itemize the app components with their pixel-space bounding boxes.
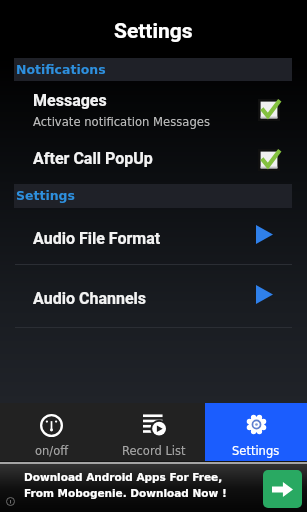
staticText: on/off [35,444,69,457]
button[interactable]: Open ad [263,470,302,508]
button[interactable]: On/Off [0,403,103,461]
other: On/Off [40,414,63,437]
staticText: Settings [232,444,280,457]
staticText: Notifications [16,62,106,77]
staticText: From Mobogenie. Download Now ! [24,487,227,499]
staticText: Record List [122,444,186,457]
staticText: Activate notification Messages [33,115,210,129]
other: Settings [246,414,267,435]
other: Ad info [6,497,15,506]
button[interactable]: Download Android Apps For Free, [0,461,307,512]
button[interactable]: Audio Channels [0,265,307,328]
staticText: After Call PopUp [33,149,153,168]
staticText: Audio File Format [33,229,161,248]
other: Record List [143,414,166,435]
button[interactable]: Messages [0,81,307,134]
staticText: Settings [16,188,76,203]
staticText: Settings [114,19,193,44]
button[interactable]: After Call PopUp [0,134,307,184]
button[interactable]: Settings [205,403,307,461]
button[interactable]: Audio File Format [0,208,307,265]
button[interactable]: Record List [103,403,205,461]
staticText: Download Android Apps For Free, [24,471,223,483]
staticText: Audio Channels [33,289,147,308]
staticText: Messages [33,91,107,110]
